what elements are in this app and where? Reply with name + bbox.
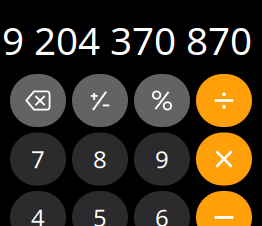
button[interactable]: Delete — [10, 74, 66, 127]
staticText: 6 — [155, 202, 169, 226]
staticText: 4 — [31, 202, 45, 226]
button[interactable]: 8 — [72, 132, 128, 185]
staticText: 5 — [93, 202, 107, 226]
staticText: 9 — [155, 143, 169, 175]
button[interactable]: 9 — [134, 132, 190, 185]
staticText: 7 — [31, 143, 45, 175]
button[interactable]: 6 — [134, 191, 190, 226]
button[interactable]: 5 — [72, 191, 128, 226]
staticText: 8 — [93, 143, 107, 175]
button[interactable]: Percent — [134, 74, 190, 127]
button[interactable]: Multiply — [196, 132, 252, 185]
button[interactable]: Divide — [196, 74, 252, 127]
button[interactable]: Subtract — [196, 191, 252, 226]
button[interactable]: 7 — [10, 132, 66, 185]
button[interactable]: Plus minus — [72, 74, 128, 127]
button[interactable]: 4 — [10, 191, 66, 226]
staticText: 9 204 370 870 — [2, 14, 252, 66]
